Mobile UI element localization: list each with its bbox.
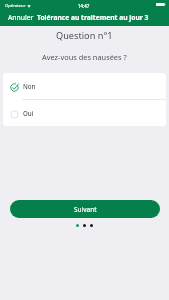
staticText: Avez-vous des nausées ? (42, 52, 127, 62)
button[interactable]: Non (3, 73, 166, 99)
staticText: Annuler (8, 13, 34, 22)
button[interactable]: Oui (3, 100, 166, 126)
button[interactable]: Suivant (10, 200, 160, 218)
button[interactable]: Annuler (8, 13, 34, 22)
staticText: Suivant (74, 205, 97, 214)
staticText: Oui (23, 109, 34, 117)
staticText: Non (23, 82, 36, 90)
staticText: Question n°1 (56, 29, 113, 42)
staticText: Tolérance au traitement au jour 3 (37, 13, 149, 22)
staticText: Opérateur (5, 3, 26, 9)
staticText: 14:47 (78, 3, 90, 9)
